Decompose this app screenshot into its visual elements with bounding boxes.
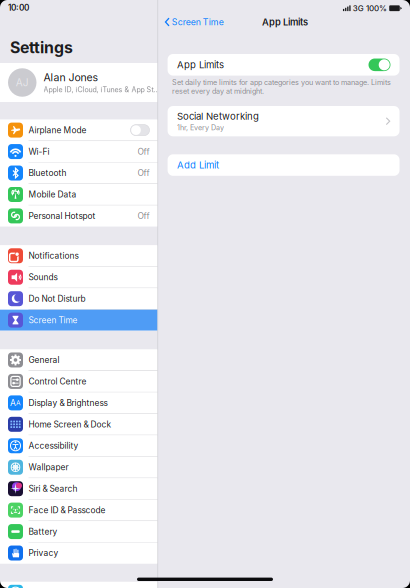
staticText: Sounds [28,272,57,282]
staticText: Off [137,211,149,221]
staticText: Control Centre [28,376,86,386]
staticText: 1hr, Every Day [177,123,224,132]
button[interactable]: Notifications [0,245,157,266]
staticText: Do Not Disturb [28,294,85,304]
staticText: Mobile Data [28,189,76,200]
staticText: Battery [28,526,57,537]
staticText: 100% [366,3,387,13]
staticText: Home Screen & Dock [28,419,111,429]
button[interactable]: Personal Hotspot [0,205,157,226]
button[interactable]: Face ID & Passcode [0,500,157,521]
staticText: Accessibility [28,441,78,451]
button[interactable]: Home Screen & Dock [0,414,157,435]
button[interactable]: AJ [0,63,157,102]
staticText: Settings [10,38,73,57]
staticText: General [28,355,59,365]
staticText: Wi-Fi [28,146,49,157]
button[interactable]: General [0,350,157,370]
staticText: Airplane Mode [28,125,86,135]
button[interactable]: Privacy [0,543,157,563]
button[interactable]: Siri & Search [0,478,157,499]
staticText: Set daily time limits for app categories… [172,78,391,95]
button[interactable]: Accessibility [0,435,157,456]
staticText: Wallpaper [28,462,68,472]
button[interactable]: Mobile Data [0,184,157,205]
button[interactable]: Airplane Mode [0,120,157,141]
button[interactable]: Sounds [0,267,157,288]
staticText: Bluetooth [28,168,66,178]
staticText: A [10,398,16,408]
button[interactable]: Social Networking [168,106,399,136]
staticText: Privacy [28,548,58,558]
staticText: Face ID & Passcode [28,505,105,515]
staticText: A [16,399,21,407]
button[interactable]: A [0,392,157,413]
staticText: Alan Jones [43,71,98,84]
button[interactable]: iTunes & App Store [0,582,157,588]
button[interactable]: Bluetooth [0,163,157,183]
staticText: Off [137,146,149,157]
staticText: 10:00 [8,3,29,13]
staticText: 3G [353,3,364,13]
staticText: Apple ID, iCloud, iTunes & App St… [43,85,159,94]
staticText: Personal Hotspot [28,211,95,221]
staticText: Screen Time [28,315,77,325]
button[interactable]: Do Not Disturb [0,288,157,309]
staticText: App Limits [262,16,308,28]
button[interactable]: Battery [0,521,157,542]
button[interactable]: Screen Time [158,14,230,30]
staticText: Display & Brightness [28,398,107,408]
staticText: Add Limit [177,159,219,171]
staticText: App Limits [177,59,224,71]
staticText: Off [137,168,149,178]
staticText: Social Networking [177,110,259,122]
button[interactable]: Add Limit [168,154,399,176]
staticText: AJ [16,76,29,89]
button[interactable]: Wallpaper [0,457,157,478]
staticText: Screen Time [172,17,224,27]
button[interactable]: Control Centre [0,371,157,392]
button[interactable]: Screen Time [0,310,157,331]
button[interactable]: Wi-Fi [0,141,157,162]
staticText: Notifications [28,251,78,261]
button[interactable]: App Limits toggle [368,58,390,71]
staticText: Siri & Search [28,484,77,494]
